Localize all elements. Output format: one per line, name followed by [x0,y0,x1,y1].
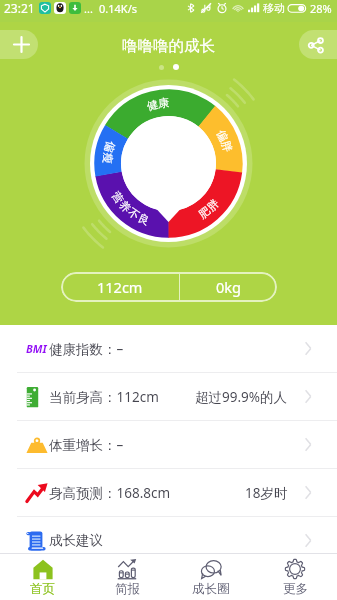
staticText: 18岁时 [245,484,288,502]
staticText: ... [84,1,93,16]
staticText: 简报 [115,581,140,597]
staticText: 超过99.9%的人 [195,388,288,406]
button[interactable]: 体重增长：– [0,421,337,469]
button[interactable]: Share [299,30,337,59]
staticText: 成长圈 [192,581,230,597]
button[interactable]: Add [0,30,38,59]
button[interactable]: 身高预测：168.8cm [0,469,337,517]
staticText: 0kg [216,277,241,297]
staticText: 噜噜噜的成长 [122,36,215,56]
staticText: 健康指数：– [49,340,124,358]
staticText: 更多 [283,581,308,597]
button[interactable]: 成长圈 [169,554,253,600]
button[interactable]: BMI [0,325,337,373]
staticText: 28% [310,1,332,16]
staticText: 体重增长：– [49,436,124,454]
button[interactable]: 更多 [253,554,337,600]
button[interactable]: 0kg [180,272,277,302]
staticText: BMI [26,341,47,356]
staticText: 移动 [263,1,285,15]
button[interactable]: 简报 [85,554,169,600]
staticText: 23:21 [4,0,35,16]
staticText: 身高预测：168.8cm [49,484,171,502]
button[interactable]: 成长建议 [0,517,337,565]
button[interactable]: 112cm [61,272,179,302]
staticText: 当前身高：112cm [49,388,159,406]
button[interactable]: 首页 [0,554,85,600]
button[interactable]: 当前身高：112cm [0,373,337,421]
staticText: 0.14K/s [99,1,137,16]
staticText: 112cm [97,277,143,297]
staticText: 成长建议 [49,532,103,549]
staticText: 首页 [30,581,55,597]
